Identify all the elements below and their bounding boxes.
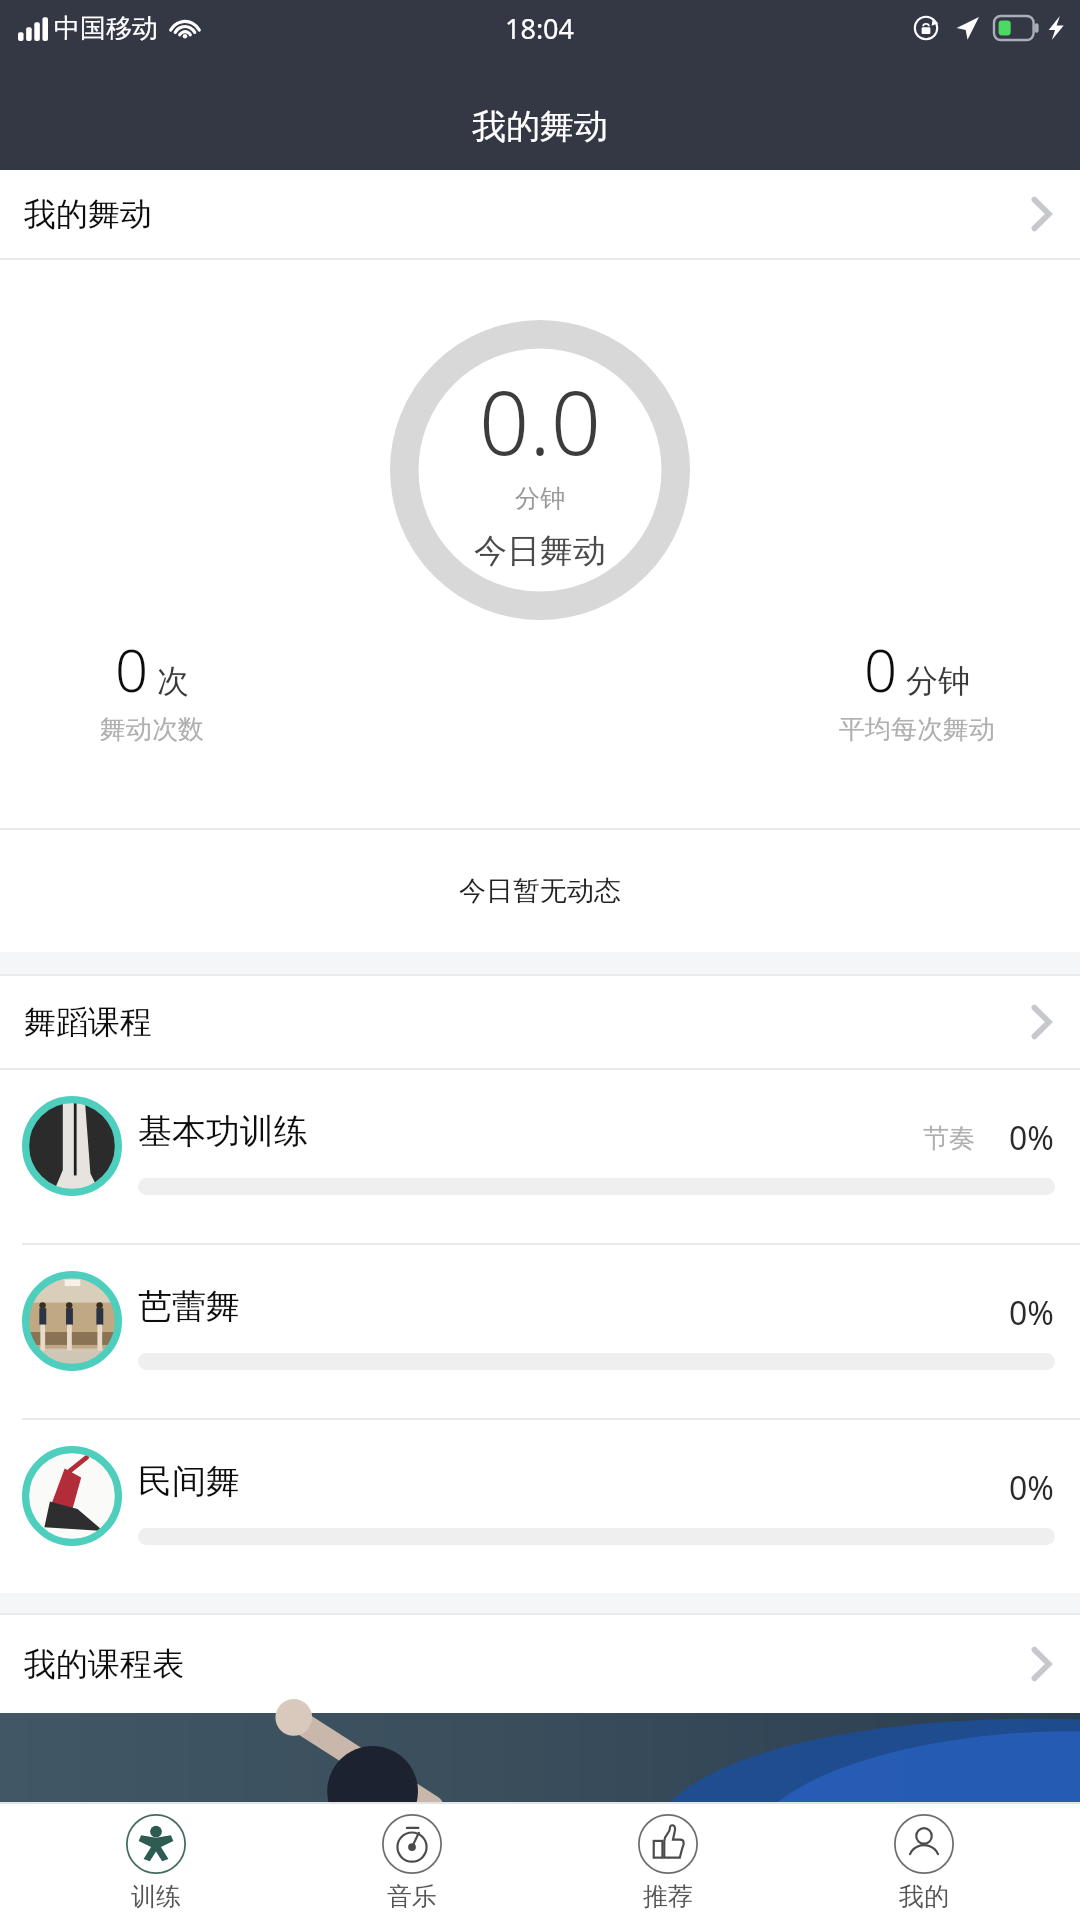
staticText: 节奏 bbox=[923, 1122, 975, 1155]
staticText: 0.0 bbox=[479, 361, 601, 481]
staticText: 我的课程表 bbox=[24, 1644, 184, 1684]
staticText: 音乐 bbox=[387, 1881, 437, 1912]
staticText: 我的 bbox=[899, 1881, 949, 1912]
staticText: 平均每次舞动 bbox=[839, 713, 995, 746]
staticText: 芭蕾舞 bbox=[138, 1285, 240, 1328]
staticText: 舞动次数 bbox=[100, 713, 204, 746]
staticText: 分钟 bbox=[515, 483, 565, 514]
button[interactable]: 我的课程表 bbox=[0, 1615, 1080, 1713]
button[interactable]: 我的舞动 bbox=[0, 170, 1080, 258]
staticText: 我的舞动 bbox=[472, 105, 608, 148]
button[interactable]: 民间舞 bbox=[0, 1420, 1080, 1593]
staticText: 18:04 bbox=[505, 10, 575, 47]
staticText: 基本功训练 bbox=[138, 1110, 308, 1153]
button[interactable]: 音乐 bbox=[312, 1813, 512, 1912]
staticText: 民间舞 bbox=[138, 1460, 240, 1503]
button[interactable]: 我的 bbox=[824, 1813, 1024, 1912]
staticText: 0 bbox=[115, 630, 149, 709]
button[interactable]: 舞蹈课程 bbox=[0, 976, 1080, 1068]
staticText: 我的舞动 bbox=[24, 194, 152, 234]
button[interactable]: 芭蕾舞 bbox=[0, 1245, 1080, 1418]
staticText: 今日暂无动态 bbox=[459, 874, 621, 908]
button[interactable]: 基本功训练 bbox=[0, 1070, 1080, 1243]
button[interactable]: 推荐 bbox=[568, 1813, 768, 1912]
staticText: 0% bbox=[1009, 1116, 1054, 1160]
staticText: 中国移动 bbox=[54, 12, 158, 45]
staticText: 推荐 bbox=[643, 1881, 693, 1912]
staticText: 0% bbox=[1009, 1291, 1054, 1335]
staticText: 今日舞动 bbox=[474, 530, 606, 572]
button[interactable]: 训练 bbox=[56, 1813, 256, 1912]
staticText: 次 bbox=[157, 661, 189, 701]
staticText: 舞蹈课程 bbox=[24, 1002, 152, 1042]
staticText: 0% bbox=[1009, 1466, 1054, 1510]
staticText: 训练 bbox=[131, 1881, 181, 1912]
staticText: 0 bbox=[864, 630, 898, 709]
staticText: 分钟 bbox=[906, 661, 970, 701]
